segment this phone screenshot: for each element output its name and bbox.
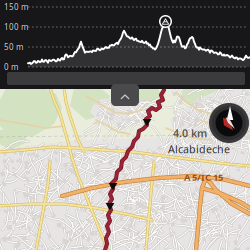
button[interactable]: Collapse elevation profile <box>111 89 139 106</box>
staticText: 50 m <box>4 42 23 52</box>
staticText: A 5/IC 15 <box>184 171 223 183</box>
staticText: 4.0 km <box>173 126 207 140</box>
staticText: Alcabideche <box>168 142 230 156</box>
staticText: 0 m <box>4 62 18 72</box>
staticText: 150 m <box>4 2 28 12</box>
staticText: 100 m <box>4 22 28 32</box>
button[interactable]: Compass <box>208 102 250 144</box>
